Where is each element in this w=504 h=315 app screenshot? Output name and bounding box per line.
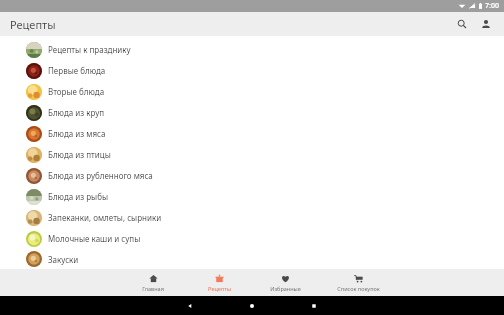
- button[interactable]: Запеканки, омлеты, сырники: [0, 207, 504, 228]
- button[interactable]: Recents: [294, 296, 334, 315]
- staticText: Вторые блюда: [48, 86, 105, 97]
- button[interactable]: Рецепты: [186, 269, 252, 296]
- staticText: 7:00: [485, 1, 499, 11]
- staticText: Рецепты: [208, 285, 231, 292]
- button[interactable]: Первые блюда: [0, 60, 504, 81]
- button[interactable]: Избранные: [252, 269, 318, 296]
- button[interactable]: Рецепты к празднику: [0, 39, 504, 60]
- staticText: Закуски: [48, 254, 79, 265]
- staticText: Запеканки, омлеты, сырники: [48, 212, 162, 223]
- staticText: Рецепты к празднику: [48, 44, 131, 55]
- staticText: Блюда из рыбы: [48, 191, 109, 202]
- button[interactable]: Блюда из круп: [0, 102, 504, 123]
- staticText: Блюда из круп: [48, 107, 105, 118]
- staticText: Молочные каши и супы: [48, 233, 141, 244]
- button[interactable]: Блюда из птицы: [0, 144, 504, 165]
- staticText: Блюда из птицы: [48, 149, 111, 160]
- button[interactable]: Back: [170, 296, 210, 315]
- button[interactable]: Список покупок: [318, 269, 398, 296]
- staticText: Блюда из рубленного мяса: [48, 170, 153, 181]
- button[interactable]: Блюда из рубленного мяса: [0, 165, 504, 186]
- staticText: Рецепты: [10, 17, 56, 32]
- button[interactable]: Вторые блюда: [0, 81, 504, 102]
- staticText: Избранные: [270, 285, 301, 292]
- staticText: Главная: [142, 285, 164, 292]
- button[interactable]: Home: [232, 296, 272, 315]
- staticText: Список покупок: [337, 285, 380, 292]
- button[interactable]: Блюда из мяса: [0, 123, 504, 144]
- button[interactable]: Блюда из рыбы: [0, 186, 504, 207]
- button[interactable]: Закуски: [0, 249, 504, 269]
- staticText: Первые блюда: [48, 65, 106, 76]
- button[interactable]: Account: [476, 14, 496, 34]
- button[interactable]: Молочные каши и супы: [0, 228, 504, 249]
- button[interactable]: Главная: [120, 269, 186, 296]
- button[interactable]: Search: [452, 14, 472, 34]
- staticText: Блюда из мяса: [48, 128, 106, 139]
